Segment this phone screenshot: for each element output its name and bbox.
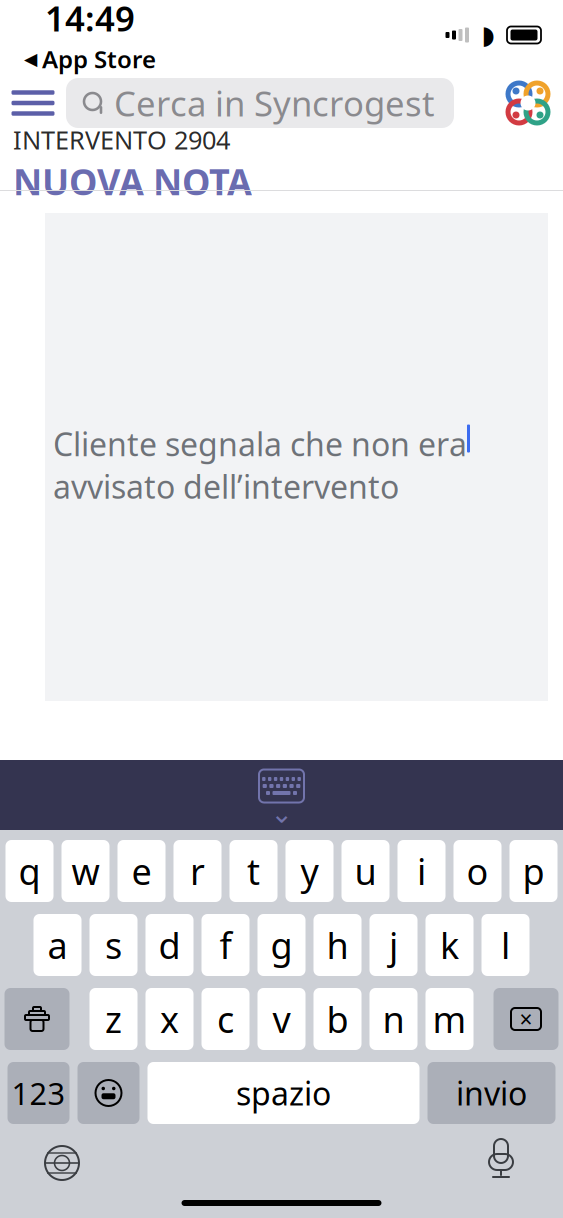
button[interactable]: f <box>201 914 249 976</box>
button[interactable]: y <box>285 840 333 902</box>
button[interactable]: Next keyboard <box>22 1138 102 1188</box>
button[interactable]: x <box>145 988 193 1050</box>
button[interactable]: k <box>425 914 473 976</box>
button[interactable]: 123 <box>7 1062 69 1124</box>
button[interactable]: d <box>145 914 193 976</box>
staticText: n <box>382 995 404 1043</box>
staticText: f <box>219 921 231 969</box>
staticText: g <box>270 921 292 969</box>
button[interactable]: invio <box>427 1062 555 1124</box>
button[interactable]: m <box>425 988 473 1050</box>
button[interactable]: Emoji <box>77 1062 139 1124</box>
button[interactable]: p <box>509 840 557 902</box>
button[interactable]: Menu <box>0 78 66 128</box>
button[interactable]: ◀ <box>24 43 156 75</box>
staticText: s <box>105 921 122 969</box>
staticText: x <box>160 995 179 1043</box>
staticText: p <box>522 847 544 895</box>
staticText: u <box>354 847 376 895</box>
button[interactable]: g <box>257 914 305 976</box>
button[interactable]: Cerca in Syncrogest <box>66 78 454 128</box>
staticText: h <box>326 921 348 969</box>
button[interactable]: Dictate <box>461 1138 541 1188</box>
staticText: spazio <box>236 1072 331 1114</box>
button[interactable]: spazio <box>147 1062 419 1124</box>
button[interactable]: Hide keyboard <box>246 764 316 826</box>
button[interactable]: Delete <box>493 988 558 1050</box>
button[interactable]: a <box>33 914 81 976</box>
staticText: j <box>389 921 398 969</box>
button[interactable]: l <box>481 914 529 976</box>
staticText: e <box>131 847 151 895</box>
button[interactable]: u <box>341 840 389 902</box>
staticText: 123 <box>11 1073 65 1113</box>
staticText: m <box>432 995 466 1043</box>
staticText: z <box>105 995 122 1043</box>
staticText: NUOVA NOTA <box>13 157 252 205</box>
button[interactable]: w <box>61 840 109 902</box>
staticText: invio <box>456 1072 527 1114</box>
staticText: v <box>272 995 290 1043</box>
staticText: × <box>519 1004 532 1034</box>
button[interactable]: Shift <box>4 988 69 1050</box>
button[interactable]: v <box>257 988 305 1050</box>
staticText: Cerca in Syncrogest <box>114 80 435 126</box>
staticText: ◀ <box>24 49 37 69</box>
button[interactable]: s <box>89 914 137 976</box>
staticText: i <box>417 847 426 895</box>
staticText: l <box>501 921 510 969</box>
staticText: k <box>440 921 459 969</box>
staticText: o <box>466 847 488 895</box>
button[interactable]: c <box>201 988 249 1050</box>
button[interactable]: h <box>313 914 361 976</box>
staticText: Cliente segnala che non era avvisato del… <box>53 422 467 507</box>
staticText: b <box>326 995 348 1043</box>
staticText: a <box>47 921 67 969</box>
button[interactable]: q <box>5 840 53 902</box>
staticText: ⌄ <box>270 798 292 829</box>
button[interactable]: n <box>369 988 417 1050</box>
staticText: r <box>190 847 205 895</box>
staticText: y <box>300 847 318 895</box>
staticText: q <box>18 847 40 895</box>
button[interactable]: o <box>453 840 501 902</box>
staticText: w <box>71 847 99 895</box>
staticText: d <box>158 921 180 969</box>
staticText: INTERVENTO 2904 <box>13 123 230 156</box>
button[interactable]: r <box>173 840 221 902</box>
staticText: c <box>217 995 234 1043</box>
staticText: t <box>247 847 260 895</box>
button[interactable]: Syncrogest <box>493 75 563 131</box>
button[interactable]: i <box>397 840 445 902</box>
staticText: ◗ <box>481 21 494 49</box>
button[interactable]: e <box>117 840 165 902</box>
button[interactable]: j <box>369 914 417 976</box>
staticText: App Store <box>42 43 156 75</box>
button[interactable]: t <box>229 840 277 902</box>
button[interactable]: b <box>313 988 361 1050</box>
staticText: 14:49 <box>45 0 135 41</box>
button[interactable]: z <box>89 988 137 1050</box>
